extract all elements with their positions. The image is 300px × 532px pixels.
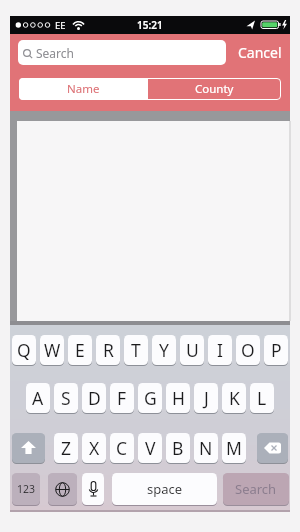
button[interactable]: G	[138, 383, 162, 413]
staticText: H	[172, 386, 185, 410]
button[interactable]: J	[194, 383, 218, 413]
button[interactable]: H	[166, 383, 190, 413]
button[interactable]: C	[110, 433, 134, 463]
staticText: N	[199, 436, 213, 460]
staticText: Z	[61, 436, 72, 460]
staticText: Cancel	[238, 43, 282, 62]
staticText: L	[257, 386, 267, 410]
button[interactable]: Y	[152, 335, 176, 365]
staticText: Y	[159, 338, 169, 362]
staticText: E	[75, 338, 85, 362]
button[interactable]: T	[124, 335, 148, 365]
staticText: U	[186, 338, 199, 362]
staticText: 15:21	[137, 18, 163, 32]
staticText: K	[229, 386, 240, 410]
button[interactable]: D	[82, 383, 106, 413]
staticText: W	[44, 338, 61, 362]
staticText: space	[147, 480, 183, 498]
staticText: O	[241, 338, 255, 362]
staticText: S	[61, 386, 71, 410]
staticText: X	[89, 436, 100, 460]
staticText: Search	[235, 480, 277, 498]
button[interactable]: K	[222, 383, 246, 413]
staticText: Q	[17, 338, 31, 362]
button[interactable]: Name	[19, 78, 148, 100]
staticText: D	[88, 386, 101, 410]
button[interactable]: I	[208, 335, 232, 365]
staticText: P	[271, 338, 282, 362]
button[interactable]: V	[138, 433, 162, 463]
button[interactable]: O	[236, 335, 260, 365]
button[interactable]	[257, 433, 288, 463]
button[interactable]: S	[54, 383, 78, 413]
button[interactable]: F	[110, 383, 134, 413]
button[interactable]: 123	[12, 473, 40, 505]
staticText: G	[144, 386, 157, 410]
staticText: Search	[36, 45, 74, 61]
staticText: R	[103, 338, 114, 362]
button[interactable]: Q	[12, 335, 36, 365]
staticText: EE	[55, 19, 75, 31]
button[interactable]: County	[148, 78, 281, 100]
staticText: County	[195, 81, 234, 97]
staticText: I	[217, 338, 223, 362]
staticText: M	[226, 436, 242, 460]
button[interactable]: L	[250, 383, 274, 413]
button[interactable]: space	[112, 473, 217, 505]
button[interactable]	[18, 40, 226, 65]
button[interactable]: P	[264, 335, 288, 365]
button[interactable]: U	[180, 335, 204, 365]
staticText: J	[204, 386, 209, 410]
button[interactable]: Search	[223, 473, 289, 505]
staticText: V	[145, 436, 156, 460]
button[interactable]: A	[26, 383, 50, 413]
button[interactable]: B	[166, 433, 190, 463]
staticText: F	[117, 386, 127, 410]
button[interactable]: E	[68, 335, 92, 365]
staticText: Name	[67, 81, 100, 97]
staticText: B	[172, 436, 184, 460]
button[interactable]	[12, 433, 45, 463]
button[interactable]: W	[40, 335, 64, 365]
staticText: A	[32, 386, 44, 410]
button[interactable]	[48, 473, 77, 505]
button[interactable]: Z	[54, 433, 78, 463]
button[interactable]	[82, 473, 104, 505]
button[interactable]: Cancel	[234, 40, 286, 65]
button[interactable]: N	[194, 433, 218, 463]
button[interactable]: X	[82, 433, 106, 463]
staticText: T	[131, 338, 141, 362]
button[interactable]: M	[222, 433, 246, 463]
staticText: C	[116, 436, 128, 460]
staticText: 123	[17, 482, 36, 496]
button[interactable]: R	[96, 335, 120, 365]
